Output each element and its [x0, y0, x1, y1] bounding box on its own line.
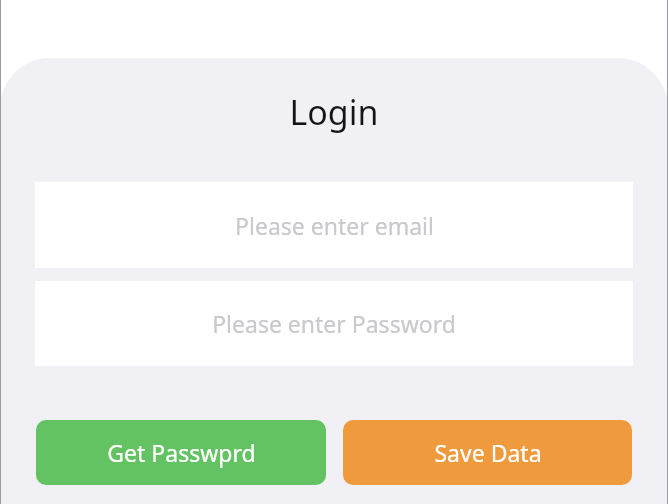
staticText: Save Data: [434, 437, 542, 468]
button[interactable]: Please enter email: [35, 182, 633, 268]
staticText: Please enter email: [235, 210, 434, 241]
staticText: Login: [289, 89, 379, 135]
staticText: Get Passwprd: [107, 437, 256, 468]
button[interactable]: Save Data: [343, 420, 632, 485]
button[interactable]: Get Passwprd: [36, 420, 326, 485]
button[interactable]: Please enter Password: [35, 281, 633, 366]
staticText: Please enter Password: [212, 308, 456, 339]
